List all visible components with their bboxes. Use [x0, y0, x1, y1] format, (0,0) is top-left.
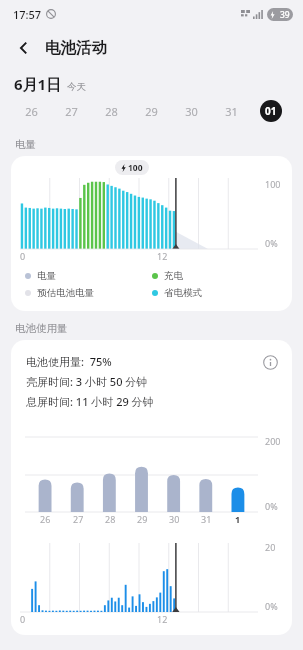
staticText: 26 — [25, 104, 38, 119]
staticText: 31 — [201, 513, 212, 525]
staticText: 今天 — [67, 81, 86, 93]
staticText: 电池使用量: 75% — [26, 354, 112, 369]
staticText: 28 — [105, 513, 116, 525]
button[interactable]: 返回 — [8, 32, 40, 64]
staticText: 31 — [225, 104, 238, 119]
staticText: 0 — [20, 250, 26, 262]
staticText: 100 — [265, 178, 281, 190]
staticText: 0% — [265, 600, 278, 612]
staticText: 01 — [265, 104, 277, 118]
staticText: 200 — [265, 435, 281, 447]
button[interactable]: 30 — [171, 94, 211, 128]
button[interactable]: 01 — [251, 94, 291, 128]
button[interactable]: 信息 — [257, 349, 283, 375]
staticText: 29 — [145, 104, 158, 119]
staticText: 6月1日 — [14, 74, 62, 94]
staticText: 26 — [40, 513, 51, 525]
staticText: 12 — [157, 613, 168, 625]
staticText: 30 — [185, 104, 198, 119]
staticText: 电池活动 — [45, 38, 107, 58]
button[interactable]: 28 — [91, 94, 131, 128]
staticText: 12 — [157, 250, 168, 262]
staticText: 28 — [105, 104, 118, 119]
staticText: 息屏时间: 11 小时 29 分钟 — [26, 394, 154, 409]
staticText: 电池使用量 — [15, 322, 68, 335]
staticText: 20 — [265, 541, 276, 553]
staticText: 充电 — [164, 270, 183, 282]
staticText: 1 — [235, 513, 241, 525]
button[interactable]: 100 — [11, 156, 292, 311]
button[interactable]: 31 — [211, 94, 251, 128]
staticText: 0 — [20, 613, 26, 625]
staticText: 29 — [137, 513, 148, 525]
staticText: 100 — [128, 162, 143, 174]
staticText: 27 — [73, 513, 84, 525]
staticText: 省电模式 — [164, 287, 202, 299]
staticText: 亮屏时间: 3 小时 50 分钟 — [26, 374, 148, 389]
button[interactable]: 电池使用量: 75% — [11, 340, 292, 635]
staticText: 39 — [280, 9, 290, 21]
staticText: 0% — [265, 500, 278, 512]
staticText: 17:57 — [13, 7, 42, 22]
button[interactable]: 27 — [51, 94, 91, 128]
button[interactable]: 29 — [131, 94, 171, 128]
staticText: 电量 — [37, 270, 56, 282]
staticText: 27 — [65, 104, 78, 119]
staticText: 预估电池电量 — [37, 287, 94, 299]
staticText: 电量 — [15, 138, 36, 151]
staticText: 0% — [265, 237, 278, 249]
staticText: 30 — [169, 513, 180, 525]
button[interactable]: 26 — [12, 94, 51, 128]
